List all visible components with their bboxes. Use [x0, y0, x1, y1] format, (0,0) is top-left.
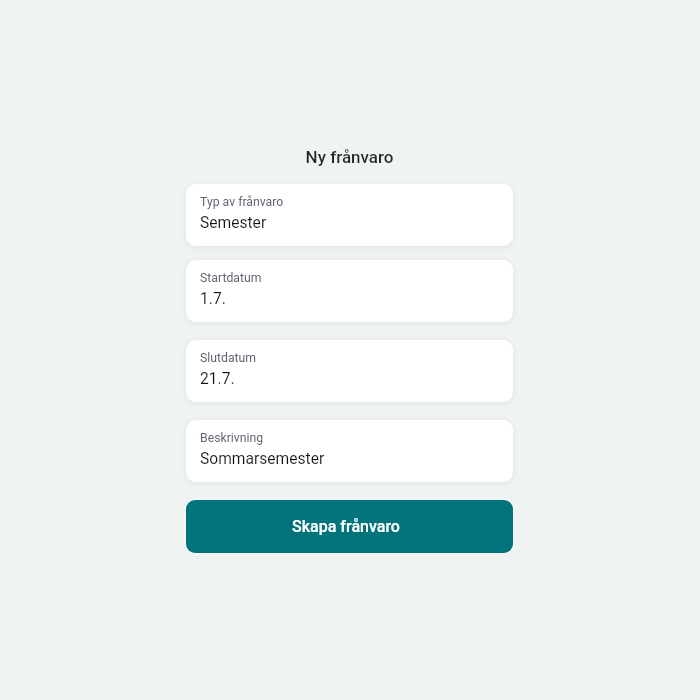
button[interactable]: Beskrivning: [186, 420, 513, 482]
staticText: Typ av frånvaro: [200, 195, 284, 209]
staticText: Skapa frånvaro: [292, 517, 400, 536]
staticText: Beskrivning: [200, 431, 264, 445]
staticText: 1.7.: [200, 290, 226, 308]
staticText: Ny frånvaro: [186, 147, 513, 167]
staticText: Sommarsemester: [200, 450, 325, 468]
button[interactable]: Slutdatum: [186, 340, 513, 402]
button[interactable]: Typ av frånvaro: [186, 184, 513, 246]
staticText: Semester: [200, 214, 267, 232]
staticText: 21.7.: [200, 370, 235, 388]
staticText: Slutdatum: [200, 351, 257, 365]
button[interactable]: Startdatum: [186, 260, 513, 322]
button[interactable]: Skapa frånvaro: [186, 500, 513, 553]
staticText: Startdatum: [200, 271, 262, 285]
